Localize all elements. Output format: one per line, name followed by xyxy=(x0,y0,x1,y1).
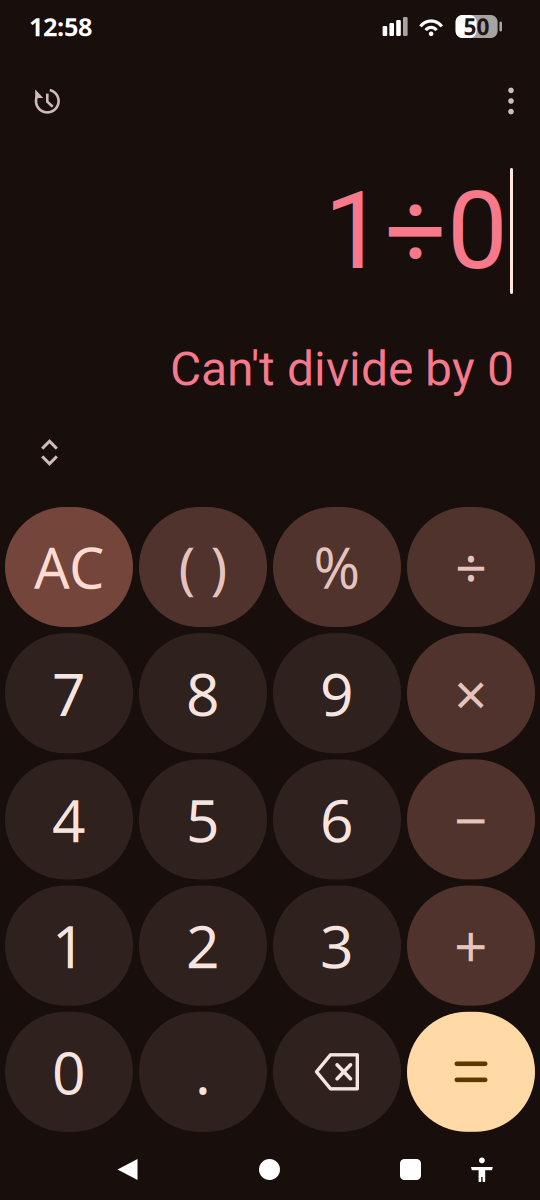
staticText: × xyxy=(454,654,488,732)
staticText: 8 xyxy=(186,654,220,732)
button[interactable]: AC xyxy=(5,507,133,627)
button[interactable]: Home xyxy=(245,1145,294,1194)
staticText: 9 xyxy=(320,654,354,732)
staticText: 5 xyxy=(186,780,220,858)
staticText: + xyxy=(454,907,488,984)
staticText: ÷ xyxy=(455,530,487,604)
button[interactable]: 3 xyxy=(273,886,401,1006)
button[interactable]: 7 xyxy=(5,633,133,753)
staticText: ( ) xyxy=(178,530,227,604)
button[interactable]: 6 xyxy=(273,759,401,879)
button[interactable]: ÷ xyxy=(407,507,535,627)
staticText: 0 xyxy=(52,1033,86,1111)
staticText: 1÷0 xyxy=(324,168,508,294)
button[interactable]: 9 xyxy=(273,633,401,753)
button[interactable]: More options xyxy=(486,74,536,127)
button[interactable]: History xyxy=(17,72,75,130)
staticText: − xyxy=(454,780,488,858)
button[interactable]: 0 xyxy=(5,1012,133,1132)
button[interactable]: Equals xyxy=(407,1012,535,1132)
button[interactable]: 8 xyxy=(139,633,267,753)
staticText: 50 xyxy=(464,11,490,41)
button[interactable]: 1 xyxy=(5,886,133,1006)
button[interactable]: 2 xyxy=(139,886,267,1006)
staticText: . xyxy=(195,1033,211,1111)
button[interactable]: ( ) xyxy=(139,507,267,627)
button[interactable]: + xyxy=(407,886,535,1006)
button[interactable]: Accessibility xyxy=(462,1147,502,1190)
staticText: 12:58 xyxy=(29,10,92,43)
staticText: 1 xyxy=(52,907,86,984)
staticText: Can't divide by 0 xyxy=(170,341,514,397)
button[interactable]: 5 xyxy=(139,759,267,879)
staticText: 6 xyxy=(320,780,354,858)
button[interactable]: Recent apps xyxy=(386,1145,435,1194)
button[interactable]: × xyxy=(407,633,535,753)
button[interactable]: % xyxy=(273,507,401,627)
staticText: AC xyxy=(34,530,104,604)
staticText: 7 xyxy=(52,654,86,732)
staticText: 2 xyxy=(186,907,220,984)
staticText: 4 xyxy=(52,780,86,858)
staticText: 3 xyxy=(320,907,354,984)
button[interactable]: 4 xyxy=(5,759,133,879)
button[interactable]: Expand history xyxy=(29,427,70,478)
button[interactable]: Back xyxy=(103,1144,152,1195)
button[interactable]: Backspace xyxy=(273,1012,401,1132)
button[interactable]: . xyxy=(139,1012,267,1132)
button[interactable]: − xyxy=(407,759,535,879)
staticText: % xyxy=(313,530,360,604)
